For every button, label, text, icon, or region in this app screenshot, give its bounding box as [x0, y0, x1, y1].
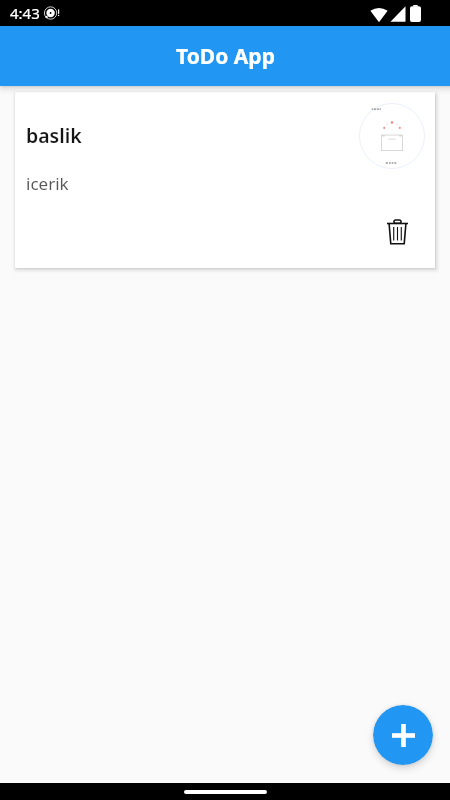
staticText: ToDo App — [176, 42, 275, 71]
staticText: icerik — [26, 172, 69, 195]
button[interactable]: baslik — [15, 92, 435, 268]
staticText: baslik — [26, 122, 82, 149]
staticText: 4:43 — [10, 3, 40, 23]
button[interactable]: Add — [373, 705, 433, 765]
button[interactable]: Delete — [365, 214, 429, 250]
